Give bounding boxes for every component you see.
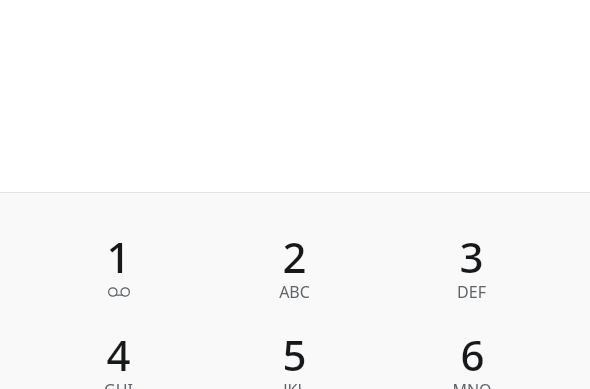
staticText: GHI: [104, 379, 133, 389]
staticText: 6: [460, 326, 485, 383]
staticText: 3: [459, 228, 484, 285]
staticText: 2: [282, 228, 307, 285]
staticText: JKL: [283, 379, 306, 389]
staticText: 5: [282, 326, 307, 383]
button[interactable]: 6: [383, 316, 560, 389]
staticText: DEF: [457, 281, 486, 303]
staticText: MNO: [452, 379, 492, 389]
button[interactable]: 2: [206, 218, 383, 317]
staticText: ABC: [279, 281, 310, 303]
staticText: 1: [106, 228, 131, 285]
button[interactable]: 1 voicemail: [30, 218, 206, 317]
staticText: 4: [106, 326, 131, 383]
button[interactable]: 3: [383, 218, 560, 317]
button[interactable]: 4: [30, 316, 206, 389]
button[interactable]: 5: [206, 316, 383, 389]
